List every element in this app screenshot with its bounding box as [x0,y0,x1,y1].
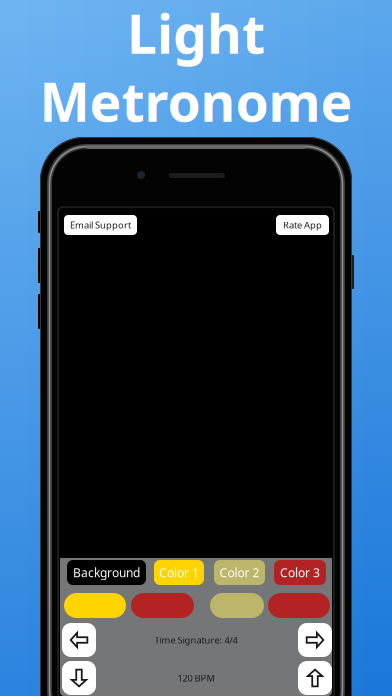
staticText: 120 BPM [177,672,214,684]
staticText: Color 2 [219,564,259,580]
staticText: Color 3 [280,564,320,580]
staticText: Light [127,0,265,68]
staticText: Metronome [39,66,352,136]
button[interactable]: Background [67,560,146,585]
button[interactable]: Flash colour 1 [64,593,126,618]
button[interactable]: Color 3 [274,560,326,585]
button[interactable]: Flash colour 2 [131,593,194,618]
button[interactable]: Rate App [276,215,329,235]
button[interactable]: Increase tempo [298,661,332,695]
button[interactable]: Color 2 [214,560,265,585]
button[interactable]: Flash colour 3 [210,593,264,618]
button[interactable]: Email Support [64,215,137,235]
button[interactable]: Next time signature [298,623,332,657]
staticText: Rate App [283,219,322,231]
button[interactable]: Flash colour 4 [268,593,330,618]
staticText: Background [73,564,140,580]
staticText: Email Support [70,219,131,231]
button[interactable]: Decrease tempo [62,661,96,695]
staticText: Color 1 [159,564,199,580]
button[interactable]: Color 1 [154,560,204,585]
staticText: Time Signature: 4/4 [154,634,237,646]
button[interactable]: Previous time signature [62,623,96,657]
